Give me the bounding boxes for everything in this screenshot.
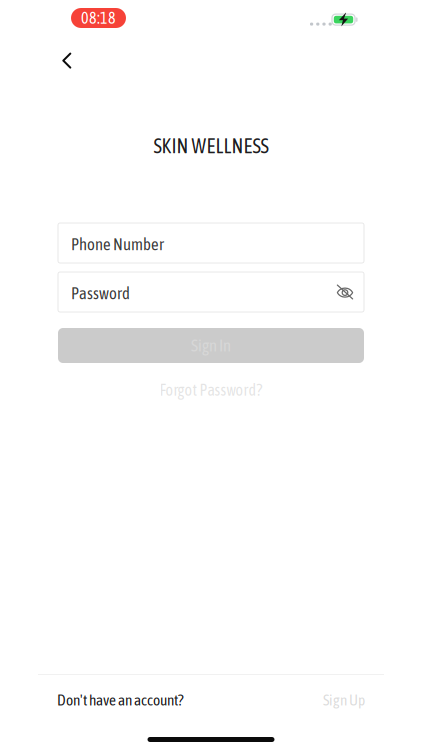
staticText: Sign Up [323,691,365,709]
staticText: 08:18 [81,9,116,27]
staticText: Phone Number [71,235,164,254]
staticText: Don't have an account? [57,691,184,709]
staticText: Sign In [191,336,231,355]
staticText: Forgot Password? [159,381,262,399]
staticText: Password [71,284,130,303]
button[interactable]: Back [45,39,89,83]
button[interactable]: Forgot Password? [159,380,262,400]
button[interactable]: Sign Up [323,691,365,709]
button[interactable]: Show password [333,280,357,304]
staticText: SKIN WELLNESS [153,134,268,157]
